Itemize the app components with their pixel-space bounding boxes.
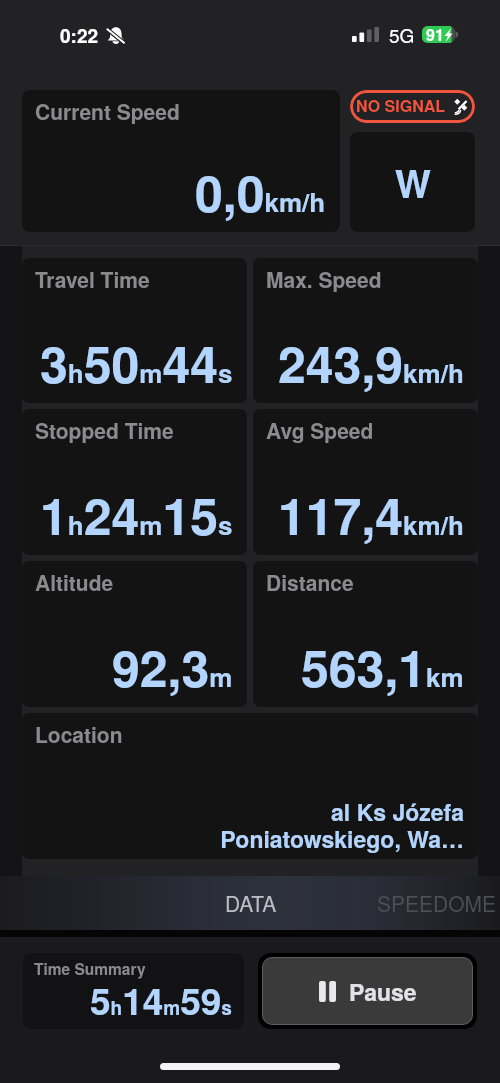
button[interactable]: Distance — [253, 561, 478, 707]
staticText: 0:22 — [60, 22, 99, 49]
button[interactable]: NO SIGNAL — [350, 90, 475, 123]
staticText: 3h50m44s — [40, 327, 233, 399]
button[interactable]: Pause — [262, 957, 473, 1025]
button[interactable]: Altitude — [22, 561, 247, 707]
staticText: 1h24m15s — [40, 479, 233, 551]
other: Silent mode — [106, 26, 125, 46]
button[interactable]: Max. Speed — [253, 258, 478, 403]
staticText: Distance — [266, 567, 354, 597]
button[interactable]: Time Summary — [23, 953, 244, 1029]
staticText: Avg Speed — [266, 415, 374, 445]
staticText: 5h14m59s — [90, 973, 232, 1026]
button[interactable]: Stopped Time — [22, 409, 247, 555]
staticText: 5G — [389, 21, 415, 48]
button[interactable]: DATA — [150, 876, 351, 930]
staticText: al Ks Józefa Poniatowskiego, Wa… — [220, 795, 464, 855]
button[interactable]: Current Speed — [22, 90, 340, 232]
staticText: 0,0km/h — [195, 156, 326, 228]
staticText: Max. Speed — [266, 264, 382, 294]
staticText: SPEEDOME — [377, 888, 497, 918]
staticText: Current Speed — [35, 96, 180, 126]
staticText: 117,4km/h — [278, 479, 464, 551]
staticText: 91 — [426, 23, 444, 46]
staticText: 243,9km/h — [278, 327, 464, 399]
button[interactable]: SPEEDOME — [351, 876, 500, 930]
staticText: NO SIGNAL — [356, 94, 445, 117]
staticText: Pause — [349, 975, 417, 1008]
button[interactable]: Avg Speed — [253, 409, 478, 555]
staticText: DATA — [225, 888, 277, 918]
staticText: Travel Time — [35, 264, 150, 294]
staticText: W — [395, 155, 431, 209]
staticText: 92,3m — [112, 631, 233, 703]
button[interactable]: W — [350, 132, 475, 232]
button[interactable]: Travel Time — [22, 258, 247, 403]
staticText: Time Summary — [34, 958, 146, 980]
staticText: Location — [35, 719, 123, 749]
other: Battery 91 percent charging — [422, 26, 458, 43]
button[interactable]: Location — [22, 713, 478, 859]
other: No GPS signal — [451, 96, 470, 115]
staticText: 563,1km — [301, 631, 464, 703]
staticText: Stopped Time — [35, 415, 174, 445]
staticText: Altitude — [35, 567, 114, 597]
other: Cellular signal — [352, 27, 379, 42]
